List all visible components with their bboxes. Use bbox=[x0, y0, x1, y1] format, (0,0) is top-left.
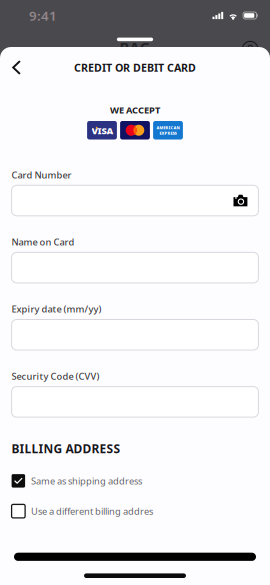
staticText: VISA bbox=[92, 124, 114, 137]
button[interactable]: Same as shipping address bbox=[12, 474, 258, 488]
staticText: Name on Card bbox=[12, 236, 75, 248]
staticText: WE ACCEPT bbox=[110, 104, 160, 116]
staticText: Card Number bbox=[12, 169, 72, 181]
button[interactable] bbox=[14, 553, 256, 561]
staticText: CREDIT OR DEBIT CARD bbox=[74, 60, 196, 75]
staticText: Same as shipping address bbox=[31, 475, 142, 487]
staticText: BAG bbox=[119, 37, 150, 57]
staticText: 9:41 bbox=[29, 7, 57, 24]
button[interactable]: Use a different billing addres bbox=[12, 504, 258, 518]
button[interactable]: Back bbox=[0, 53, 32, 82]
staticText: EXPRESS bbox=[159, 131, 176, 136]
staticText: AMERICAN bbox=[156, 125, 179, 130]
staticText: Security Code (CVV) bbox=[12, 370, 100, 382]
button[interactable]: Scan card bbox=[228, 188, 252, 213]
staticText: Use a different billing addres bbox=[31, 505, 153, 517]
staticText: BILLING ADDRESS bbox=[12, 441, 121, 456]
staticText: Expiry date (mm/yy) bbox=[12, 303, 102, 315]
